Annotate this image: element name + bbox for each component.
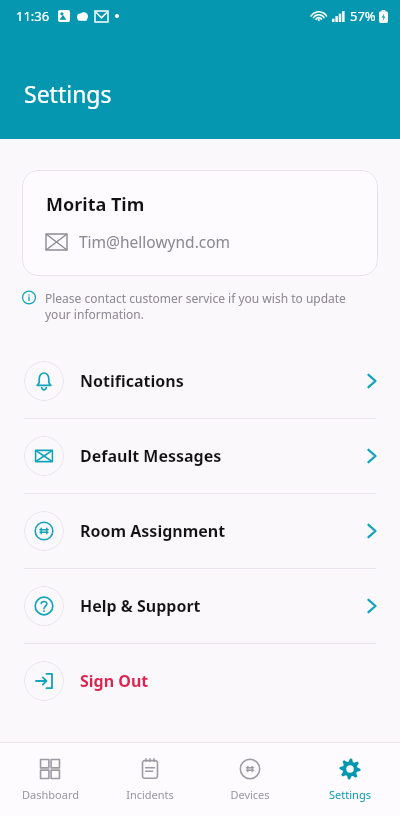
staticText: Dashboard [22, 787, 79, 802]
button[interactable]: Room Assignment [0, 494, 400, 568]
button[interactable]: Devices [200, 750, 300, 810]
staticText: Settings [329, 787, 371, 802]
button[interactable]: Settings [300, 750, 400, 810]
staticText: Devices [230, 787, 270, 802]
staticText: Settings [24, 78, 112, 109]
staticText: Default Messages [80, 445, 364, 467]
button[interactable]: Incidents [100, 750, 200, 810]
staticText: Tim@hellowynd.com [79, 231, 231, 252]
staticText: 11:36 [16, 7, 50, 25]
staticText: Sign Out [80, 670, 380, 692]
staticText: Incidents [126, 787, 174, 802]
button[interactable]: Dashboard [0, 750, 100, 810]
button[interactable]: Notifications [0, 344, 400, 418]
staticText: Notifications [80, 370, 364, 392]
staticText: Morita Tim [46, 192, 145, 217]
staticText: Room Assignment [80, 520, 364, 542]
staticText: Please contact customer service if you w… [45, 290, 374, 322]
button[interactable]: Help & Support [0, 569, 400, 643]
staticText: 57% [350, 7, 376, 25]
button[interactable]: Default Messages [0, 419, 400, 493]
button[interactable]: Sign Out [0, 644, 400, 718]
staticText: Help & Support [80, 595, 364, 617]
button[interactable]: Morita Tim [22, 170, 378, 276]
